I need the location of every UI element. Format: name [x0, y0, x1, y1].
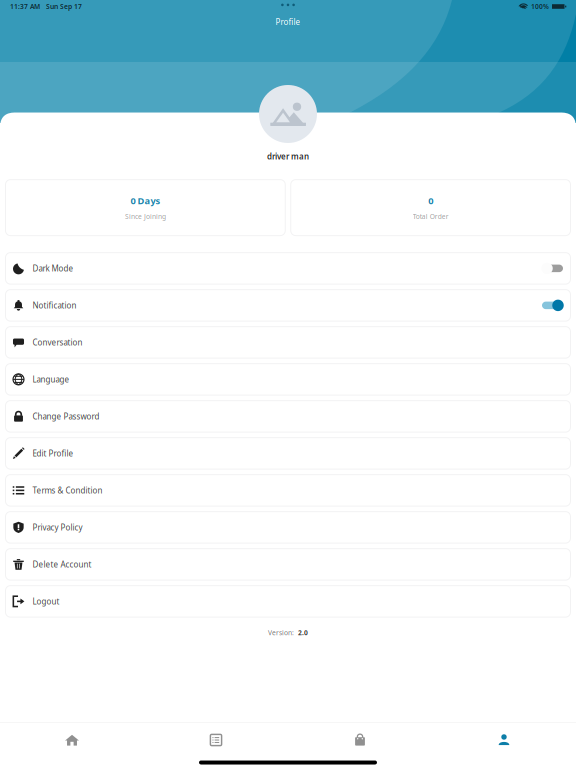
- button[interactable]: Change Password: [5, 401, 570, 432]
- button[interactable]: Logout: [5, 586, 570, 617]
- staticText: Edit Profile: [32, 448, 73, 459]
- button[interactable]: Terms & Condition: [5, 475, 570, 506]
- staticText: Language: [32, 374, 69, 385]
- staticText: Version:: [268, 628, 294, 637]
- staticText: 11:37 AM: [10, 2, 40, 11]
- staticText: 0 Days: [130, 194, 160, 207]
- staticText: Since Joining: [125, 212, 166, 221]
- button[interactable]: Orders: [144, 723, 288, 757]
- staticText: Change Password: [32, 411, 99, 422]
- button[interactable]: Language: [5, 364, 570, 395]
- staticText: Sun Sep 17: [46, 2, 82, 11]
- staticText: Logout: [32, 596, 59, 607]
- staticText: 2.0: [298, 628, 308, 637]
- staticText: 0: [428, 194, 433, 207]
- staticText: Profile: [275, 17, 300, 27]
- button[interactable]: Edit Profile: [5, 438, 570, 469]
- button[interactable]: Profile: [432, 723, 576, 757]
- button[interactable]: Notification: [5, 290, 570, 321]
- staticText: Dark Mode: [32, 263, 73, 274]
- button[interactable]: Home: [0, 723, 144, 757]
- staticText: Total Order: [413, 212, 449, 221]
- staticText: Delete Account: [32, 559, 91, 570]
- button[interactable]: Privacy Policy: [5, 512, 570, 543]
- button[interactable]: Shop: [288, 723, 432, 757]
- staticText: Conversation: [32, 337, 82, 348]
- staticText: Privacy Policy: [32, 522, 82, 533]
- button[interactable]: Conversation: [5, 327, 570, 358]
- staticText: 100%: [531, 2, 549, 11]
- staticText: Notification: [32, 300, 76, 311]
- button[interactable]: Dark Mode: [5, 253, 570, 284]
- button[interactable]: Delete Account: [5, 549, 570, 580]
- staticText: driver man: [267, 151, 309, 162]
- staticText: Terms & Condition: [32, 485, 102, 496]
